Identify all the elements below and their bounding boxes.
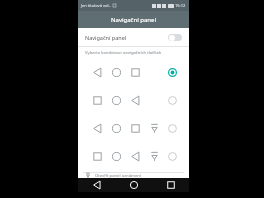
staticText: Navigační panel — [111, 16, 156, 24]
staticText: Vyberte kombinaci navigačních tlačítek — [85, 50, 162, 56]
button[interactable]: Back — [78, 178, 115, 192]
staticText: Navigační panel — [85, 34, 127, 41]
button[interactable]: Home — [115, 178, 152, 192]
button[interactable]: Recents — [152, 178, 189, 192]
button[interactable]: Otevřít panel oznámení — [78, 173, 189, 178]
staticText: 15:12 — [175, 3, 186, 8]
button[interactable] — [83, 146, 184, 166]
staticText: Jen titulová vol.. — [81, 3, 111, 8]
button[interactable] — [83, 62, 184, 82]
staticText: Otevřít panel oznámení — [95, 173, 141, 178]
button[interactable]: Navigační panel — [78, 28, 189, 46]
button[interactable] — [83, 118, 184, 138]
button[interactable] — [83, 90, 184, 110]
